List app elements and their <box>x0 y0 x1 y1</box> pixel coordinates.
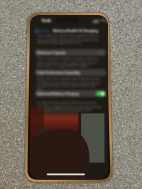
button[interactable]: Maximum Capacity <box>35 49 106 56</box>
staticText: Built-in dynamic software and hardware s… <box>37 77 103 90</box>
staticText: 10:44 <box>41 18 51 23</box>
staticText: To reduce battery ageing, iPhone learns … <box>37 101 103 111</box>
button[interactable]: Optimized Battery Charging <box>35 90 106 97</box>
staticText: Phone batteries, like all rechargeable b… <box>37 34 103 44</box>
staticText: Battery <box>38 28 51 33</box>
staticText: This is a measure of battery capacity re… <box>37 57 103 67</box>
staticText: Maximum Capacity <box>37 51 66 55</box>
button[interactable]: Battery <box>35 28 51 33</box>
staticText: 87% <box>98 51 104 55</box>
staticText: Peak Performance Capability <box>37 71 81 75</box>
button[interactable]: Peak Performance Capability <box>35 69 106 76</box>
staticText: Battery Health & Charging <box>53 28 98 33</box>
staticText: Optimized Battery Charging <box>37 92 79 96</box>
